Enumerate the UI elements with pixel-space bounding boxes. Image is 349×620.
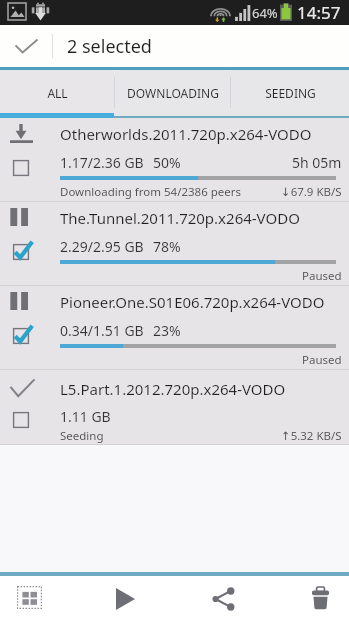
staticText: Paused — [302, 352, 342, 368]
staticText: 2.29/2.95 GB — [60, 237, 144, 256]
button[interactable]: Select item — [0, 370, 349, 445]
button[interactable]: ALL — [0, 70, 114, 118]
button[interactable]: Select item — [0, 286, 349, 370]
staticText: 5h 05m — [292, 153, 342, 172]
button[interactable]: Delete — [299, 576, 342, 620]
staticText: 1.11 GB — [60, 407, 111, 426]
staticText: 14:57 — [297, 1, 341, 24]
staticText: The.Tunnel.2011.720p.x264-VODO — [60, 208, 300, 228]
staticText: Paused — [302, 268, 342, 284]
staticText: SEEDING — [265, 85, 316, 101]
staticText: L5.Part.1.2012.720p.x264-VODO — [60, 379, 286, 399]
staticText: Pioneer.One.S01E06.720p.x264-VODO — [60, 292, 325, 312]
staticText: ↓67.9 KB/S — [281, 184, 342, 200]
button[interactable]: Select item — [13, 412, 33, 432]
staticText: Seeding — [60, 428, 104, 444]
staticText: 2 selected — [67, 34, 152, 59]
staticText: 64% — [252, 4, 278, 22]
button[interactable]: Select item — [13, 160, 33, 180]
staticText: 23% — [153, 321, 181, 340]
staticText: 50% — [153, 153, 181, 172]
staticText: Downloading from 54/2386 peers — [60, 184, 242, 200]
staticText: ALL — [47, 85, 68, 101]
staticText: 1.17/2.36 GB — [60, 153, 144, 172]
staticText: 0.34/1.51 GB — [60, 321, 144, 340]
staticText: 78% — [153, 237, 181, 256]
staticText: DOWNLOADING — [127, 85, 219, 101]
button[interactable]: Select item — [13, 244, 33, 264]
button[interactable]: Share — [199, 576, 248, 620]
button[interactable]: Select item — [0, 118, 349, 202]
button[interactable]: Select item — [0, 202, 349, 286]
staticText: Otherworlds.2011.720p.x264-VODO — [60, 124, 312, 144]
button[interactable]: Select all — [4, 576, 55, 620]
button[interactable]: Select item — [13, 328, 33, 348]
staticText: ↑5.32 KB/S — [281, 428, 342, 444]
button[interactable]: Start — [103, 576, 148, 620]
button[interactable]: DOWNLOADING — [115, 70, 230, 118]
button[interactable]: Done — [0, 25, 52, 67]
button[interactable]: SEEDING — [231, 70, 349, 118]
